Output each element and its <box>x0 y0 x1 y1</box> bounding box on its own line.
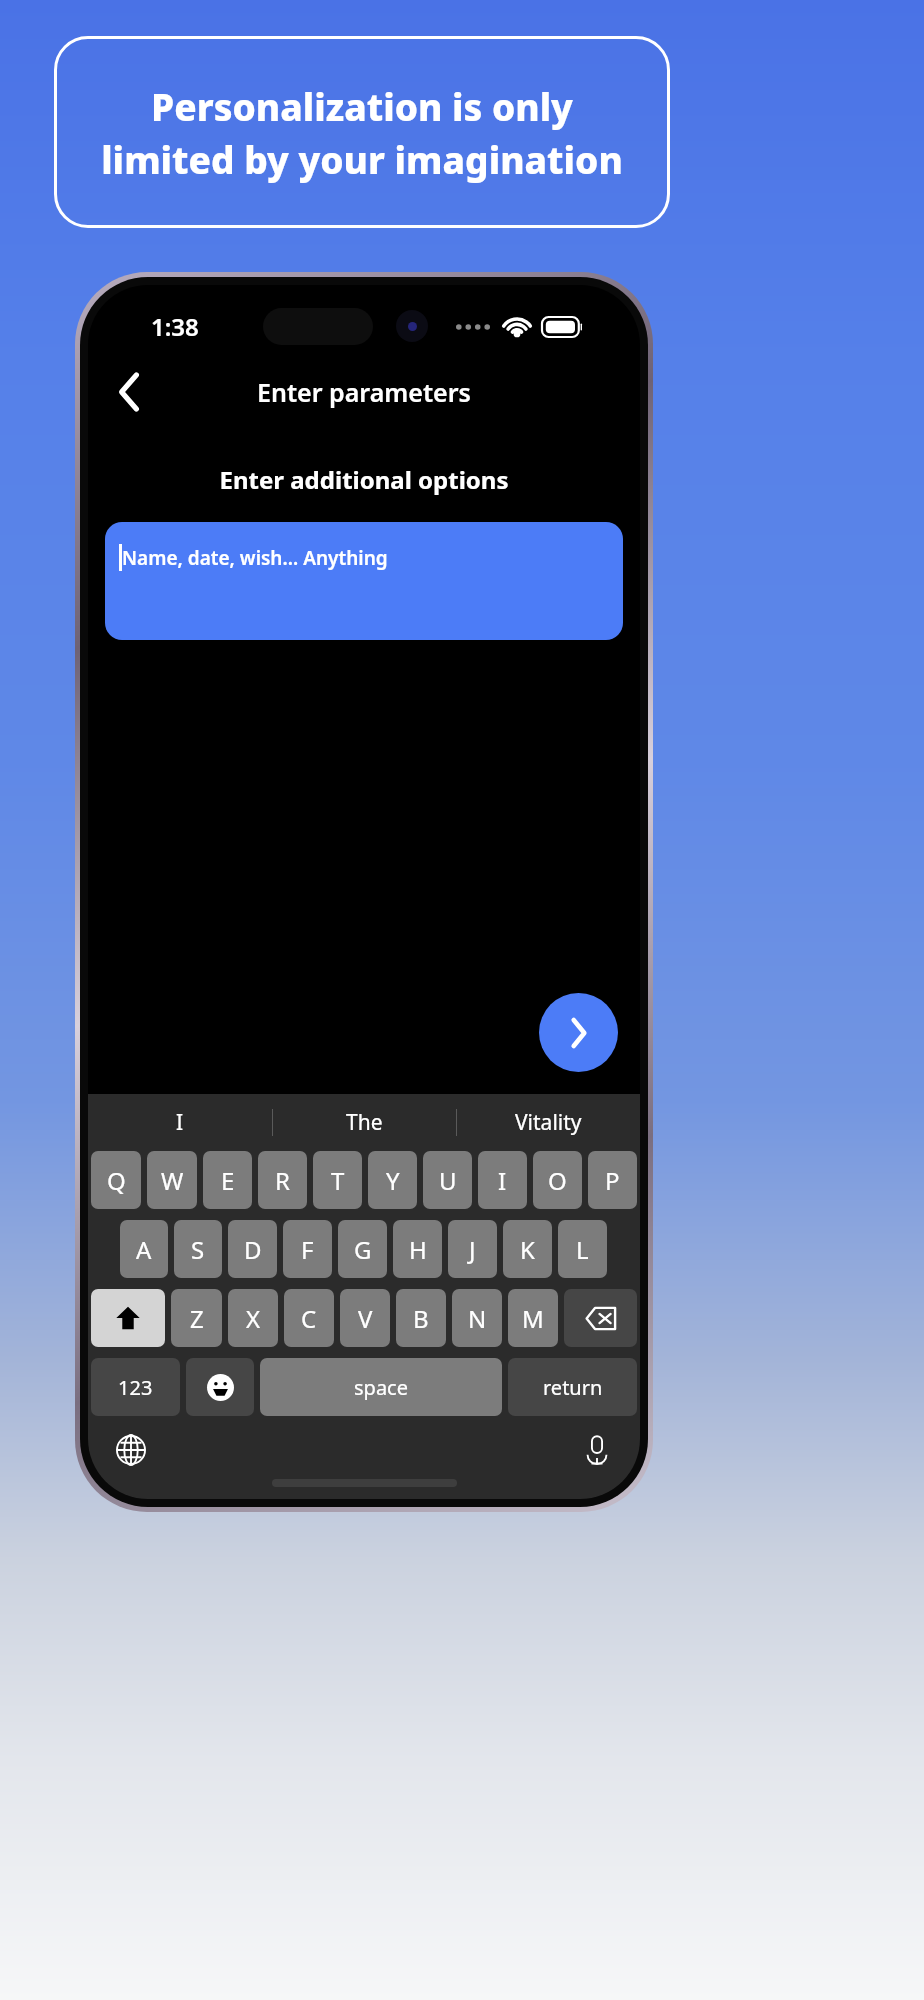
button[interactable]: H <box>393 1220 442 1278</box>
button[interactable]: L <box>558 1220 607 1278</box>
staticText: J <box>469 1233 476 1266</box>
staticText: M <box>522 1302 544 1335</box>
staticText: Enter additional options <box>88 463 640 496</box>
staticText: H <box>409 1233 427 1266</box>
staticText: D <box>244 1233 262 1266</box>
button[interactable]: 123 <box>91 1358 180 1416</box>
button[interactable]: W <box>147 1151 197 1209</box>
button[interactable]: T <box>313 1151 362 1209</box>
button[interactable]: S <box>174 1220 222 1278</box>
staticText: W <box>161 1164 184 1197</box>
staticText: I <box>498 1164 507 1197</box>
button[interactable]: Change keyboard <box>106 1425 156 1475</box>
staticText: I <box>176 1108 184 1137</box>
button[interactable]: V <box>340 1289 390 1347</box>
button[interactable]: The <box>273 1094 456 1151</box>
button[interactable]: Q <box>91 1151 141 1209</box>
button[interactable]: G <box>338 1220 387 1278</box>
staticText: Personalization is only limited by your … <box>101 81 623 184</box>
staticText: Name, date, wish... Anything <box>122 545 388 571</box>
staticText: O <box>548 1164 567 1197</box>
staticText: Y <box>386 1164 400 1197</box>
staticText: S <box>191 1233 205 1266</box>
button[interactable]: D <box>228 1220 277 1278</box>
button[interactable]: Vitality <box>457 1094 640 1151</box>
staticText: V <box>358 1302 373 1335</box>
staticText: N <box>468 1302 487 1335</box>
button[interactable]: Next <box>539 993 618 1072</box>
button[interactable]: P <box>588 1151 637 1209</box>
staticText: G <box>354 1233 372 1266</box>
button[interactable]: U <box>423 1151 472 1209</box>
button[interactable]: I <box>478 1151 527 1209</box>
button[interactable]: K <box>503 1220 552 1278</box>
button[interactable]: Name, date, wish... Anything <box>105 522 623 640</box>
staticText: U <box>439 1164 457 1197</box>
staticText: A <box>136 1233 152 1266</box>
staticText: return <box>543 1374 603 1401</box>
staticText: space <box>354 1374 408 1401</box>
button[interactable]: B <box>396 1289 446 1347</box>
button[interactable]: R <box>258 1151 307 1209</box>
button[interactable]: return <box>508 1358 637 1416</box>
button[interactable]: A <box>120 1220 168 1278</box>
staticText: T <box>331 1164 345 1197</box>
button[interactable]: F <box>283 1220 332 1278</box>
staticText: Enter parameters <box>257 375 471 409</box>
button[interactable]: Back <box>102 364 158 420</box>
staticText: 123 <box>118 1374 153 1401</box>
button[interactable]: space <box>260 1358 502 1416</box>
staticText: E <box>221 1164 235 1197</box>
staticText: R <box>275 1164 290 1197</box>
button[interactable]: J <box>448 1220 497 1278</box>
button[interactable]: X <box>228 1289 278 1347</box>
staticText: Vitality <box>515 1108 582 1137</box>
button[interactable]: Voice input <box>572 1425 622 1475</box>
staticText: B <box>413 1302 429 1335</box>
staticText: C <box>301 1302 317 1335</box>
button[interactable]: Backspace <box>564 1289 637 1347</box>
staticText: K <box>520 1233 535 1266</box>
button[interactable]: I <box>88 1094 272 1151</box>
button[interactable]: N <box>452 1289 502 1347</box>
button[interactable]: M <box>508 1289 558 1347</box>
button[interactable]: Emoji <box>186 1358 254 1416</box>
button[interactable]: Shift <box>91 1289 165 1347</box>
staticText: F <box>301 1233 314 1266</box>
staticText: X <box>246 1302 261 1335</box>
staticText: The <box>346 1108 383 1137</box>
staticText: Z <box>190 1302 204 1335</box>
staticText: Q <box>107 1164 126 1197</box>
button[interactable]: O <box>533 1151 582 1209</box>
button[interactable]: Z <box>171 1289 222 1347</box>
button[interactable]: E <box>203 1151 252 1209</box>
button[interactable]: C <box>284 1289 334 1347</box>
staticText: 1:38 <box>151 310 199 343</box>
button[interactable]: Y <box>368 1151 417 1209</box>
staticText: L <box>576 1233 589 1266</box>
staticText: P <box>605 1164 620 1197</box>
